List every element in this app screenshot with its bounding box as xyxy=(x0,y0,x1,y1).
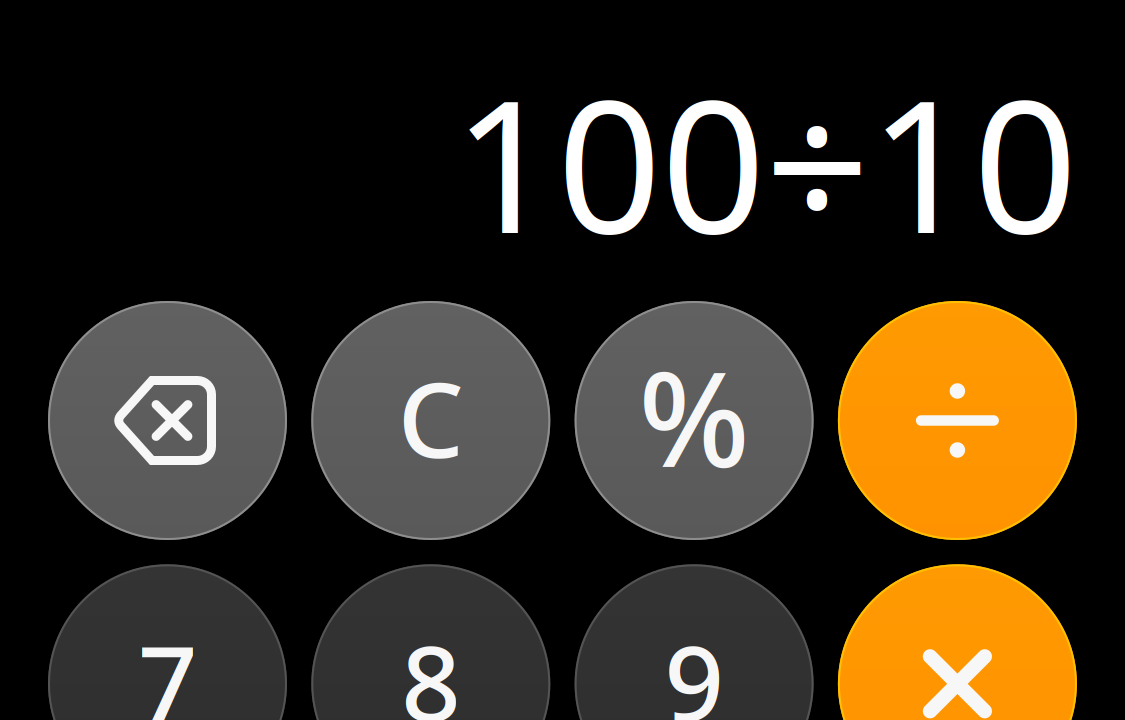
staticText: 8 xyxy=(401,612,460,720)
staticText: 9 xyxy=(665,612,724,720)
button[interactable]: % xyxy=(575,301,814,540)
staticText: C xyxy=(398,348,464,486)
button[interactable]: 7 xyxy=(48,564,287,720)
button[interactable]: C xyxy=(311,301,550,540)
staticText: 100÷10 xyxy=(453,41,1077,283)
staticText: % xyxy=(639,330,750,503)
button[interactable]: 9 xyxy=(575,564,814,720)
button[interactable]: Divide xyxy=(838,301,1077,540)
button[interactable]: 8 xyxy=(311,564,550,720)
button[interactable]: Delete xyxy=(48,301,287,540)
button[interactable]: Multiply xyxy=(838,564,1077,720)
staticText: 7 xyxy=(138,612,197,720)
